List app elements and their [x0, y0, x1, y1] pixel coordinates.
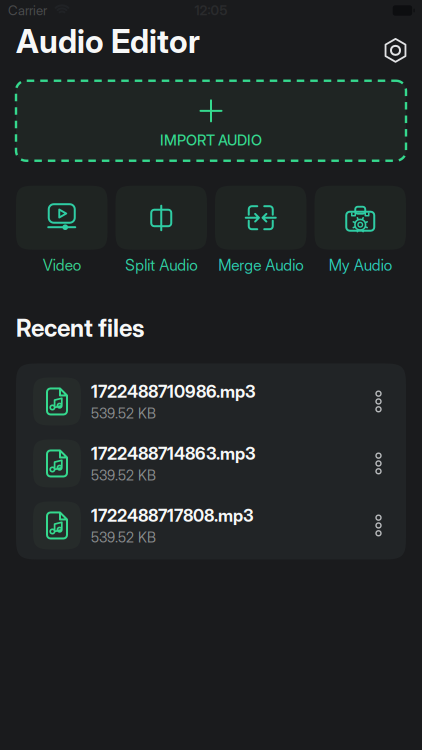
staticText: IMPORT AUDIO [160, 131, 262, 149]
staticText: Carrier [8, 2, 47, 18]
staticText: Split Audio [125, 256, 197, 274]
button[interactable]: IMPORT AUDIO [16, 81, 406, 161]
staticText: Video [43, 256, 81, 274]
button[interactable]: My Audio [314, 186, 406, 274]
staticText: 1722488710986.mp3 [91, 381, 256, 402]
button[interactable]: Video [16, 186, 107, 274]
staticText: 1722488717808.mp3 [91, 505, 254, 526]
button[interactable]: Merge Audio [215, 186, 306, 274]
staticText: My Audio [329, 256, 392, 274]
staticText: Audio Editor [16, 22, 200, 61]
staticText: 539.52 KB [91, 467, 156, 484]
staticText: Recent files [16, 313, 144, 342]
staticText: 539.52 KB [91, 405, 156, 422]
button[interactable]: 1722488710986.mp3 [33, 377, 366, 425]
staticText: 539.52 KB [91, 529, 156, 546]
button[interactable]: 1722488714863.mp3 [33, 439, 366, 487]
staticText: 1722488714863.mp3 [91, 443, 256, 464]
button[interactable] [383, 29, 408, 54]
button[interactable]: 1722488717808.mp3 [33, 501, 366, 549]
button[interactable] [376, 515, 389, 536]
button[interactable]: Split Audio [115, 186, 207, 274]
button[interactable] [376, 453, 389, 474]
staticText: 12:05 [194, 2, 227, 18]
staticText: Merge Audio [218, 256, 303, 274]
button[interactable] [376, 391, 389, 412]
